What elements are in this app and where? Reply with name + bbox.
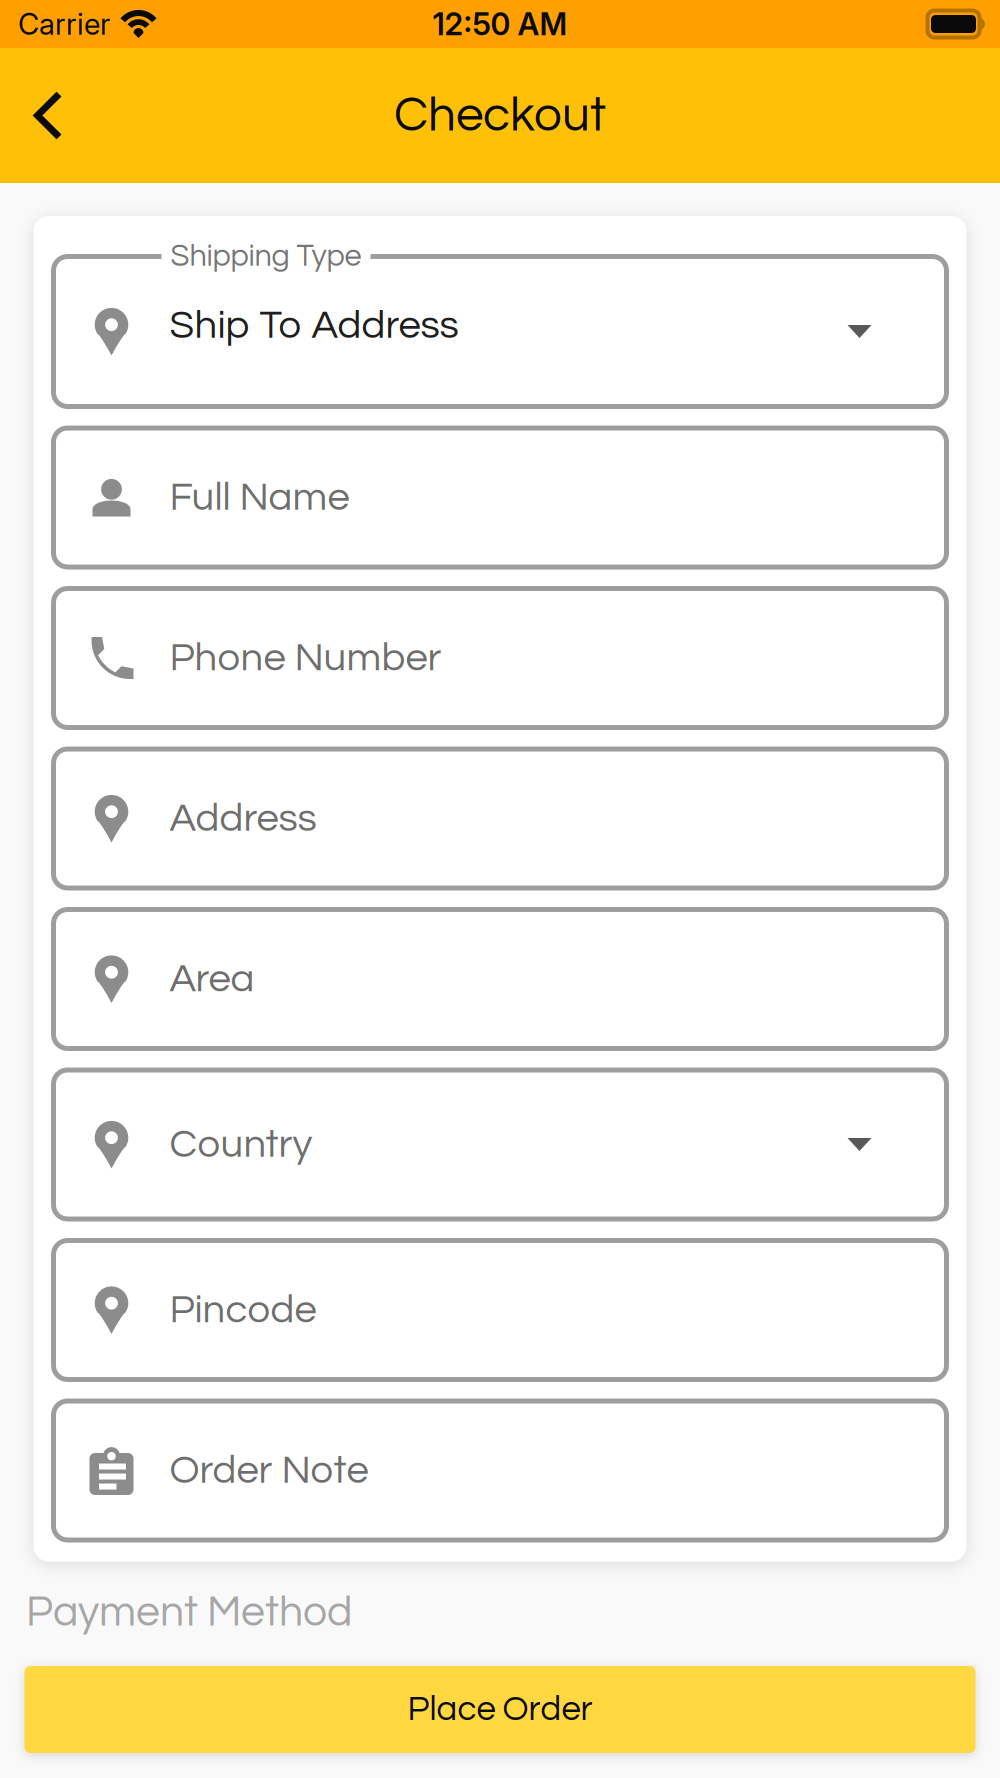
button[interactable]: Phone Number xyxy=(53,588,946,727)
staticText: Place Order xyxy=(407,1692,592,1727)
staticText: Shipping Type xyxy=(170,241,361,272)
staticText: Checkout xyxy=(394,90,606,141)
staticText: Payment Method xyxy=(26,1590,352,1634)
staticText: Phone Number xyxy=(169,637,441,679)
button[interactable]: Place Order xyxy=(24,1666,975,1753)
button[interactable]: Order Note xyxy=(53,1401,946,1540)
staticText: 12:50 AM xyxy=(432,5,567,42)
button[interactable]: Address xyxy=(53,749,946,888)
staticText: Carrier xyxy=(18,6,110,42)
staticText: Country xyxy=(169,1124,312,1165)
button[interactable]: Back xyxy=(0,48,94,183)
button[interactable]: Country xyxy=(53,1070,946,1219)
button[interactable]: Pincode xyxy=(53,1240,946,1379)
button[interactable]: Area xyxy=(53,909,946,1048)
staticText: Order Note xyxy=(169,1450,368,1491)
staticText: Address xyxy=(169,798,316,839)
staticText: Full Name xyxy=(169,477,349,518)
button[interactable]: Full Name xyxy=(53,428,946,567)
staticText: Pincode xyxy=(169,1289,316,1331)
staticText: Area xyxy=(169,958,254,1000)
staticText: Ship To Address xyxy=(169,305,458,346)
button[interactable]: Ship To Address xyxy=(53,256,946,406)
